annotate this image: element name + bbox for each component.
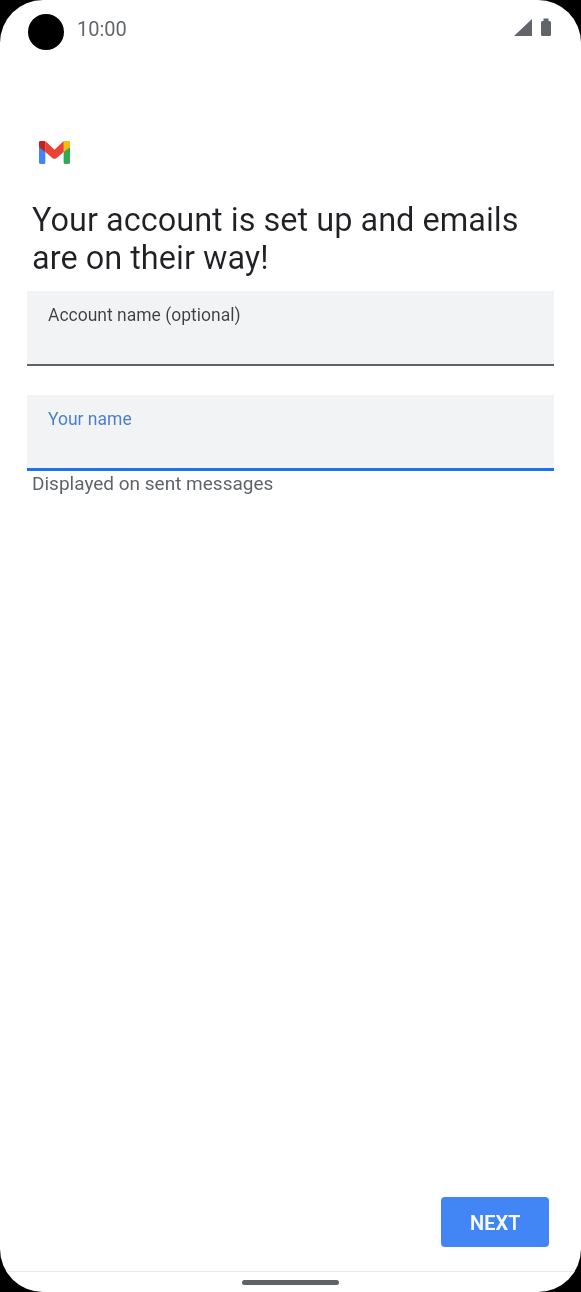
staticText: NEXT: [470, 1211, 521, 1234]
button[interactable]: Account name (optional): [27, 291, 554, 366]
staticText: 10:00: [77, 17, 127, 40]
button[interactable]: NEXT: [441, 1197, 549, 1247]
staticText: Account name (optional): [48, 305, 241, 326]
button[interactable]: Your name: [27, 395, 554, 471]
other: Gmail: [39, 141, 70, 164]
button[interactable]: Home: [242, 1280, 339, 1285]
staticText: Your account is set up and emails are on…: [32, 201, 537, 277]
staticText: Your name: [48, 409, 132, 430]
staticText: Displayed on sent messages: [32, 472, 274, 494]
